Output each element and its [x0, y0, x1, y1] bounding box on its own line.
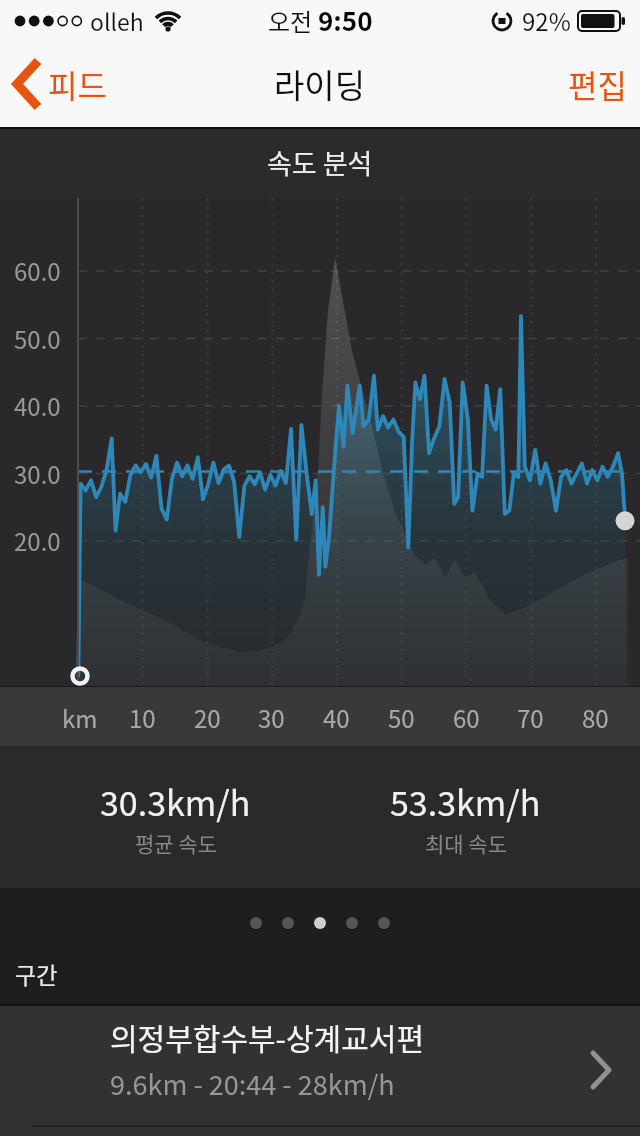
staticText: olleh: [90, 4, 144, 37]
staticText: 9:50: [318, 1, 373, 39]
button[interactable]: 편집: [568, 61, 627, 107]
staticText: 속도 분석: [267, 143, 373, 182]
staticText: 10: [129, 700, 156, 735]
staticText: 30: [258, 700, 285, 735]
staticText: 최대 속도: [425, 828, 507, 858]
staticText: km: [62, 700, 98, 735]
staticText: 피드: [48, 61, 107, 107]
staticText: 9.6km - 20:44 - 28km/h: [110, 1064, 395, 1103]
staticText: 오전: [268, 3, 318, 38]
button[interactable]: 피드: [14, 59, 107, 109]
staticText: 편집: [568, 61, 627, 107]
staticText: 구간: [15, 957, 58, 990]
staticText: 60.0: [14, 253, 61, 288]
button[interactable]: 의정부합수부-상계교서편: [0, 1004, 640, 1136]
staticText: 80: [582, 700, 609, 735]
staticText: 20: [194, 700, 221, 735]
staticText: 50: [388, 700, 415, 735]
staticText: 40.0: [14, 388, 61, 423]
staticText: 70: [517, 700, 544, 735]
staticText: 라이딩: [274, 60, 366, 108]
staticText: 92%: [522, 3, 571, 38]
staticText: 30.3km/h: [100, 777, 251, 826]
staticText: 53.3km/h: [390, 777, 541, 826]
staticText: 20.0: [14, 523, 61, 558]
staticText: 30.0: [14, 456, 61, 491]
staticText: 의정부합수부-상계교서편: [110, 1015, 425, 1058]
staticText: 40: [323, 700, 350, 735]
staticText: 60: [453, 700, 480, 735]
staticText: 50.0: [14, 321, 61, 356]
staticText: 평균 속도: [135, 828, 217, 858]
